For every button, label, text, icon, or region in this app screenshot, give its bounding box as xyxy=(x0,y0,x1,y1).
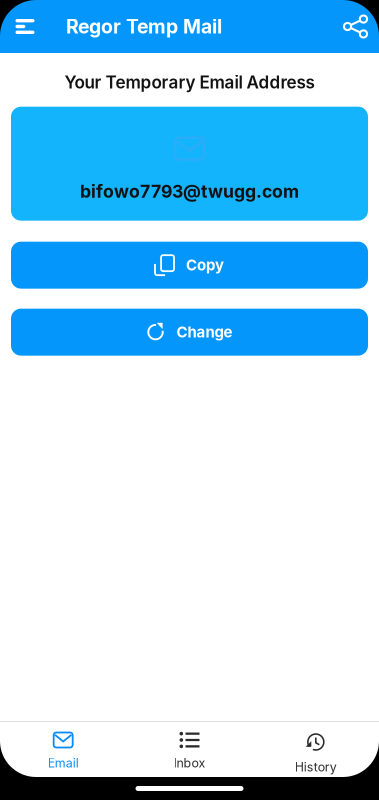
button[interactable]: Inbox xyxy=(126,721,253,777)
staticText: History xyxy=(295,759,337,774)
staticText: Regor Temp Mail xyxy=(66,15,222,38)
button[interactable]: Menu xyxy=(0,0,50,53)
staticText: Email xyxy=(48,755,79,770)
button[interactable]: History xyxy=(253,721,379,777)
staticText: Inbox xyxy=(173,755,205,770)
staticText: Your Temporary Email Address xyxy=(64,72,314,93)
button[interactable]: Copy xyxy=(11,242,368,289)
button[interactable]: Change xyxy=(11,309,368,356)
staticText: Copy xyxy=(186,256,224,274)
staticText: bifowo7793@twugg.com xyxy=(80,181,299,202)
button[interactable]: Email xyxy=(0,721,126,777)
button[interactable]: Share xyxy=(332,0,379,53)
staticText: Change xyxy=(176,323,232,341)
